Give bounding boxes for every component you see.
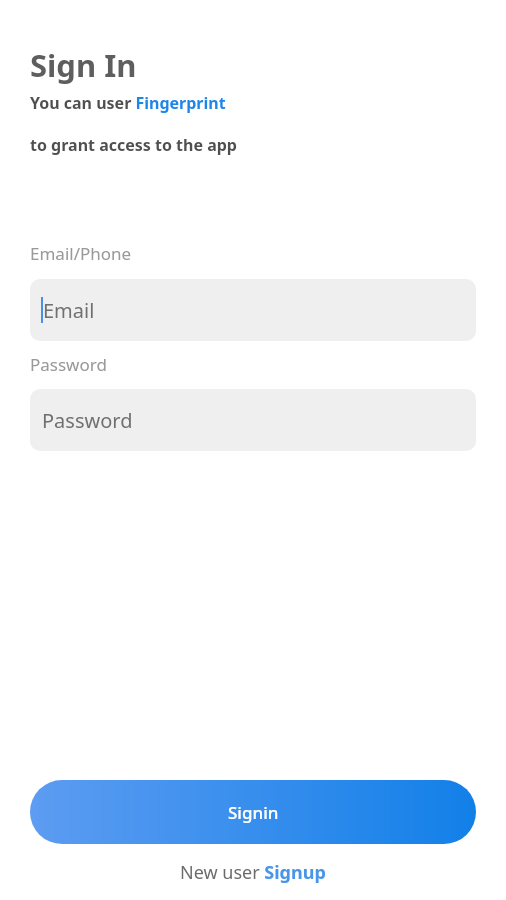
staticText: New user Signup — [180, 860, 326, 885]
staticText: Password — [42, 407, 133, 434]
button[interactable]: Password — [30, 389, 476, 451]
staticText: to grant access to the app — [30, 134, 237, 156]
staticText: Sign In — [30, 44, 137, 86]
staticText: Password — [30, 353, 107, 376]
button[interactable]: Signin — [30, 780, 476, 844]
staticText: Email — [43, 297, 95, 324]
button[interactable]: New user Signup — [30, 860, 476, 885]
button[interactable]: Email — [30, 279, 476, 341]
staticText: Signin — [228, 801, 279, 824]
staticText: Email/Phone — [30, 242, 132, 265]
staticText: You can user Fingerprint — [30, 92, 226, 114]
